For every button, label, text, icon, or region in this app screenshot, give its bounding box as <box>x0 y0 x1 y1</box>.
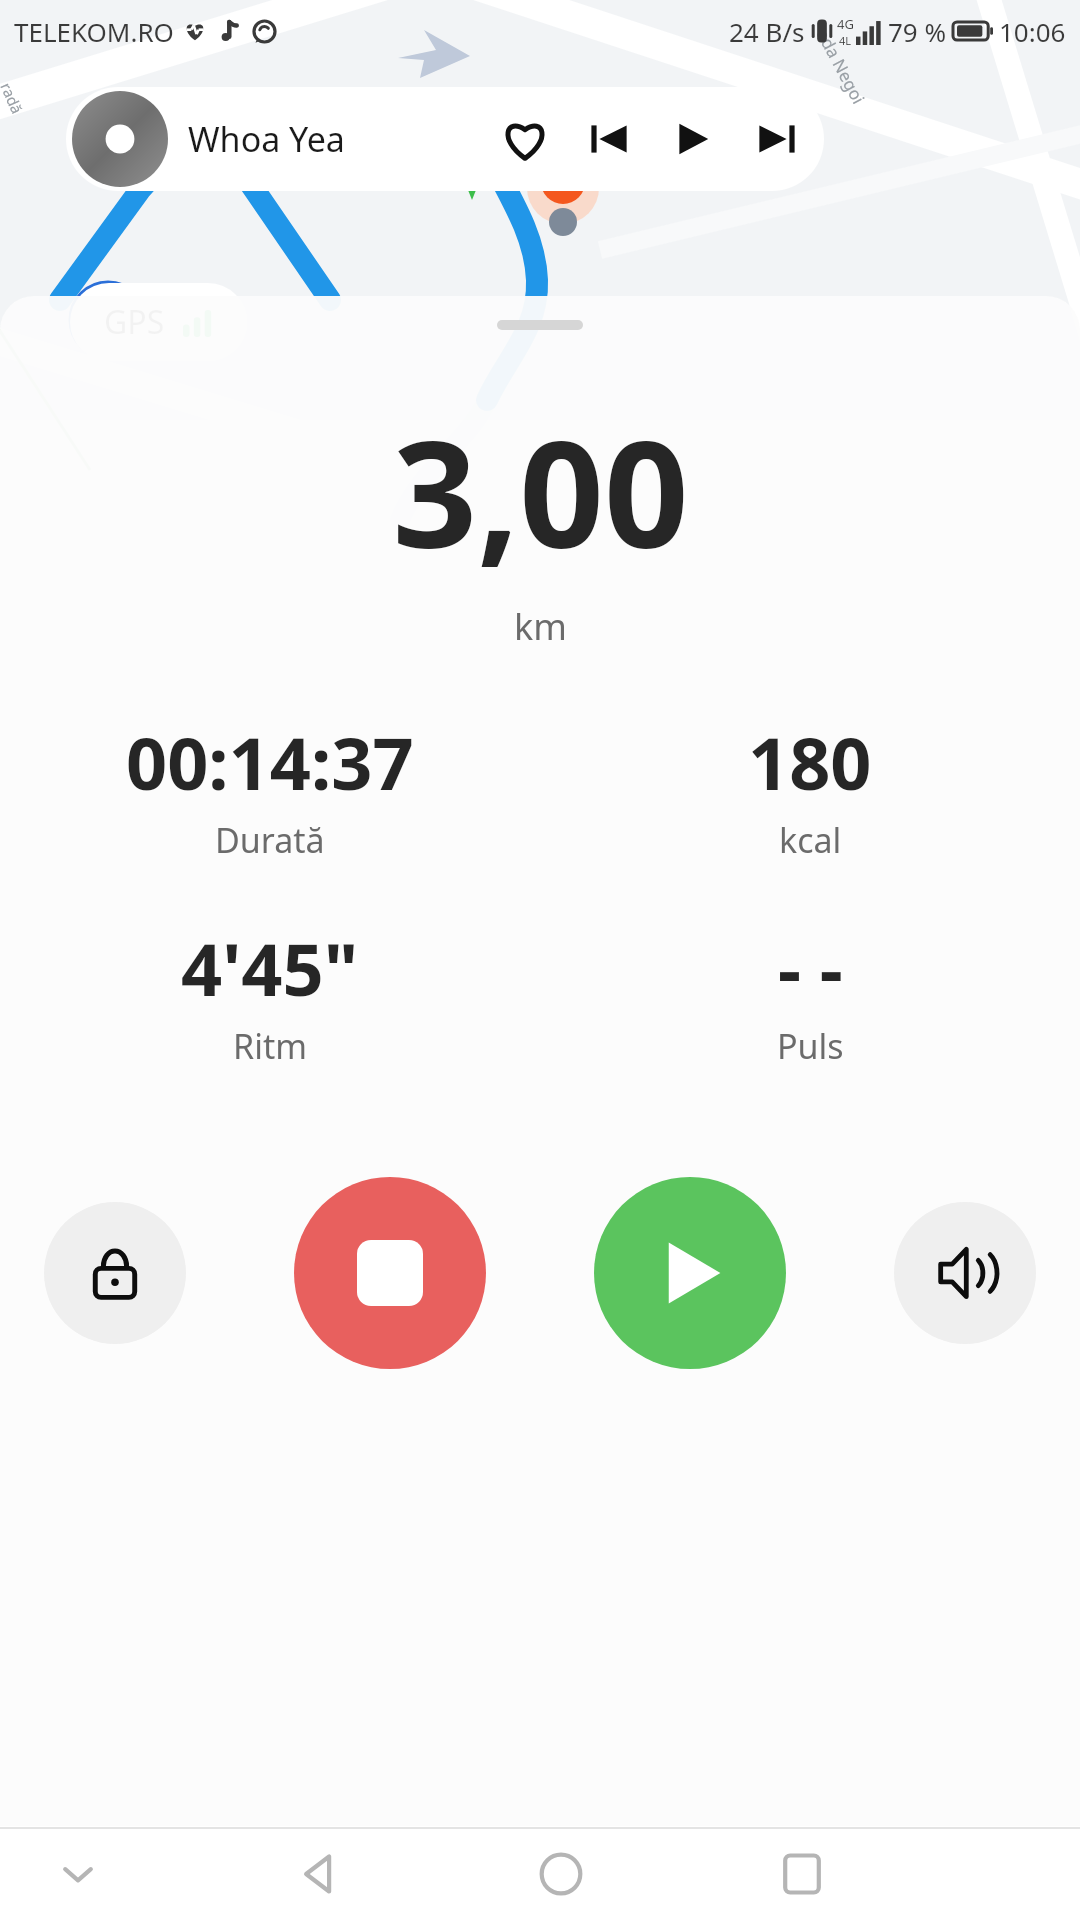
staticText: Puls <box>777 1023 844 1069</box>
staticText: 24 B/s <box>729 14 805 49</box>
staticText: Ritm <box>233 1023 307 1069</box>
staticText: 00:14:37 <box>126 713 414 811</box>
button[interactable]: Play <box>656 102 730 176</box>
button[interactable]: Resume workout <box>594 1177 786 1369</box>
staticText: Durată <box>215 817 325 863</box>
staticText: TELEKOM.RO <box>14 14 174 49</box>
staticText: 10:06 <box>999 14 1066 49</box>
staticText: 4L <box>839 33 852 48</box>
staticText: - - <box>778 919 843 1017</box>
staticText: Whoa Yea <box>188 116 345 162</box>
button[interactable]: Lock screen <box>44 1202 186 1344</box>
staticText: ada Negoi <box>812 25 870 108</box>
button[interactable]: Volume <box>894 1202 1036 1344</box>
staticText: km <box>514 602 567 651</box>
button[interactable]: Back <box>271 1828 367 1920</box>
staticText: kcal <box>779 817 842 863</box>
button[interactable]: Favorite <box>488 102 562 176</box>
staticText: 4'45" <box>181 919 359 1017</box>
button[interactable]: Whoa Yea <box>66 87 824 191</box>
button[interactable]: Home <box>513 1828 609 1920</box>
staticText: 180 <box>748 713 872 811</box>
staticText: 79 % <box>888 14 947 49</box>
button[interactable]: Next track <box>740 102 814 176</box>
staticText: 4G <box>837 15 854 33</box>
button[interactable]: Recents <box>754 1828 850 1920</box>
button[interactable]: Stop workout <box>294 1177 486 1369</box>
staticText: radă <box>0 79 28 117</box>
staticText: 3,00 <box>392 390 689 592</box>
staticText: GPS <box>104 300 165 344</box>
button[interactable]: Previous track <box>572 102 646 176</box>
button[interactable]: Hide <box>30 1828 126 1920</box>
button[interactable]: GPS <box>70 283 247 361</box>
